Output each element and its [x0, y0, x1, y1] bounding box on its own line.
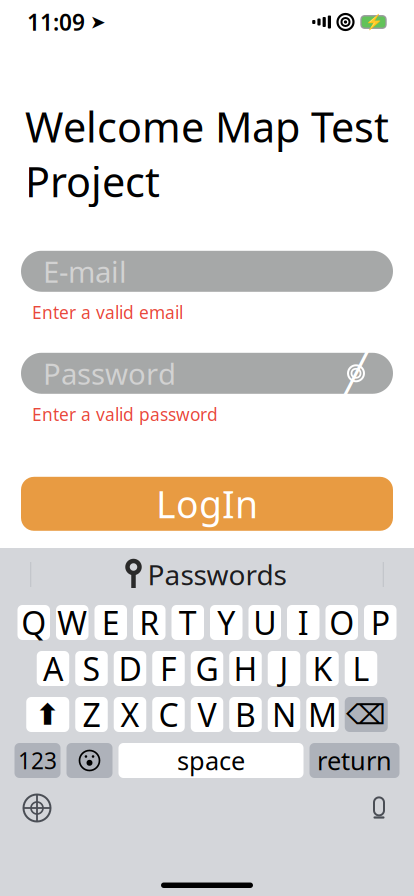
- button[interactable]: Passwords: [127, 556, 286, 593]
- button[interactable]: R: [133, 605, 165, 640]
- staticText: U: [253, 601, 276, 644]
- button[interactable]: I: [287, 605, 319, 640]
- staticText: Y: [217, 601, 235, 644]
- staticText: ➤: [90, 11, 106, 33]
- button[interactable]: Y: [210, 605, 242, 640]
- staticText: ╱: [344, 351, 368, 396]
- button[interactable]: U: [248, 605, 281, 640]
- staticText: S: [82, 647, 100, 690]
- staticText: Password: [43, 354, 176, 393]
- button[interactable]: L: [345, 651, 377, 686]
- button[interactable]: B: [229, 697, 262, 732]
- staticText: G: [195, 647, 218, 690]
- staticText: Enter a valid password: [32, 403, 218, 426]
- staticText: Z: [82, 693, 100, 736]
- button[interactable]: E: [94, 605, 127, 640]
- button[interactable]: LogIn: [21, 477, 393, 531]
- button[interactable]: Password: [21, 353, 393, 394]
- staticText: Passwords: [147, 556, 286, 593]
- button[interactable]: return: [309, 743, 399, 778]
- button[interactable]: M: [306, 697, 339, 732]
- staticText: ⬆: [35, 698, 60, 731]
- button[interactable]: H: [229, 651, 262, 686]
- staticText: D: [118, 647, 141, 690]
- button[interactable]: Z: [75, 697, 108, 732]
- staticText: Create an account: [235, 596, 343, 659]
- staticText: J: [279, 647, 288, 690]
- button[interactable]: W: [56, 605, 88, 640]
- staticText: X: [120, 693, 139, 736]
- staticText: LogIn: [156, 479, 258, 529]
- button[interactable]: T: [171, 605, 204, 640]
- staticText: Don’t have an account, yet?: [71, 596, 226, 659]
- button[interactable]: V: [191, 697, 223, 732]
- staticText: H: [233, 647, 257, 690]
- staticText: T: [179, 601, 197, 644]
- button[interactable]: Next keyboard: [22, 793, 52, 823]
- staticText: I: [298, 601, 309, 644]
- button[interactable]: P: [364, 605, 396, 640]
- button[interactable]: Shift: [26, 697, 69, 732]
- staticText: P: [371, 601, 390, 644]
- button[interactable]: K: [306, 651, 339, 686]
- staticText: Welcome Map Test Project: [25, 99, 389, 209]
- button[interactable]: 123: [14, 743, 60, 778]
- button[interactable]: Create an account: [235, 596, 343, 659]
- staticText: ⚡: [364, 14, 382, 30]
- button[interactable]: Emoji: [66, 743, 112, 778]
- button[interactable]: C: [152, 697, 185, 732]
- staticText: C: [158, 693, 178, 736]
- staticText: A: [43, 647, 63, 690]
- button[interactable]: D: [114, 651, 146, 686]
- staticText: E-mail: [43, 252, 127, 291]
- staticText: K: [312, 647, 332, 690]
- staticText: M: [308, 693, 337, 736]
- staticText: space: [177, 744, 245, 777]
- staticText: L: [352, 647, 369, 690]
- staticText: Q: [21, 601, 46, 644]
- staticText: F: [160, 647, 177, 690]
- staticText: B: [235, 693, 256, 736]
- button[interactable]: S: [75, 651, 108, 686]
- staticText: O: [329, 601, 354, 644]
- button[interactable]: space: [118, 743, 303, 778]
- staticText: E: [102, 601, 120, 644]
- button[interactable]: Dictation: [366, 793, 392, 823]
- button[interactable]: A: [37, 651, 69, 686]
- button[interactable]: X: [114, 697, 146, 732]
- button[interactable]: Delete: [345, 697, 388, 732]
- button[interactable]: O: [325, 605, 358, 640]
- staticText: R: [139, 601, 159, 644]
- button[interactable]: N: [268, 697, 300, 732]
- button[interactable]: Q: [17, 605, 50, 640]
- staticText: N: [272, 693, 296, 736]
- button[interactable]: E-mail: [21, 251, 393, 292]
- staticText: 123: [18, 745, 57, 775]
- staticText: Enter a valid email: [32, 301, 183, 324]
- button[interactable]: G: [191, 651, 223, 686]
- staticText: ⌫: [346, 699, 386, 730]
- button[interactable]: J: [268, 651, 300, 686]
- button[interactable]: F: [152, 651, 185, 686]
- staticText: V: [197, 693, 216, 736]
- staticText: W: [57, 601, 87, 644]
- staticText: return: [317, 744, 392, 777]
- staticText: 11:09: [27, 7, 85, 37]
